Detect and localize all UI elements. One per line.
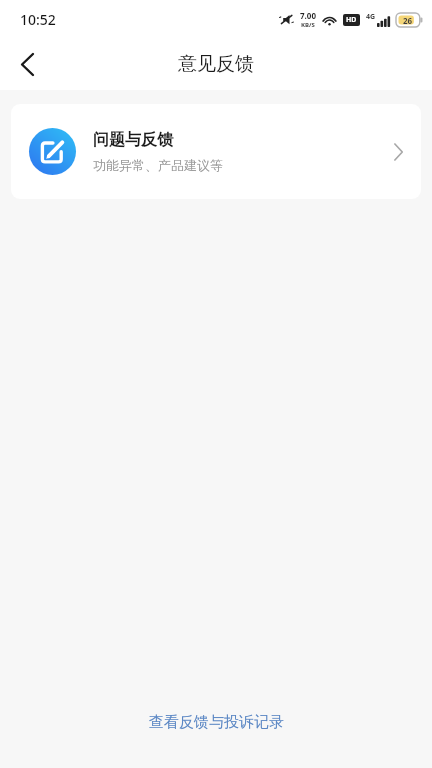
- staticText: 问题与反馈: [93, 130, 173, 150]
- button[interactable]: 问题与反馈: [11, 104, 421, 199]
- button[interactable]: Back: [6, 43, 48, 85]
- staticText: KB/S: [301, 21, 315, 29]
- staticText: 7.00: [300, 10, 316, 21]
- staticText: HD: [346, 15, 357, 25]
- staticText: 10:52: [20, 10, 56, 29]
- staticText: 功能异常、产品建议等: [93, 157, 223, 173]
- staticText: 4G: [366, 12, 376, 22]
- button[interactable]: 查看反馈与投诉记录: [135, 707, 298, 738]
- staticText: 查看反馈与投诉记录: [149, 713, 284, 732]
- staticText: 26: [403, 15, 413, 26]
- staticText: 意见反馈: [178, 52, 254, 76]
